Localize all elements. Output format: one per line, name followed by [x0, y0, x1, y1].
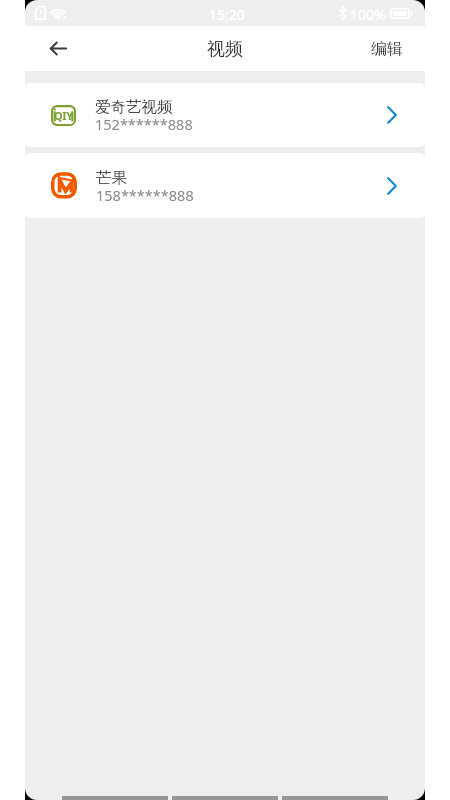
staticText: 15:20 [209, 5, 245, 24]
staticText: 编辑 [371, 39, 403, 59]
staticText: QIY [54, 108, 73, 123]
staticText: 爱奇艺视频 [95, 97, 173, 117]
staticText: 152******888 [95, 114, 193, 134]
button[interactable]: 编辑 [355, 29, 425, 69]
button[interactable]: QIY [25, 83, 425, 147]
staticText: 100% [350, 5, 386, 24]
staticText: 158******888 [96, 185, 194, 205]
button[interactable]: 进入 [375, 169, 409, 203]
staticText: 视频 [207, 38, 243, 61]
button[interactable]: 芒果 [25, 153, 425, 218]
button[interactable]: 返回 [38, 28, 79, 69]
button[interactable]: 进入 [375, 98, 409, 132]
staticText: 芒果 [96, 168, 127, 188]
